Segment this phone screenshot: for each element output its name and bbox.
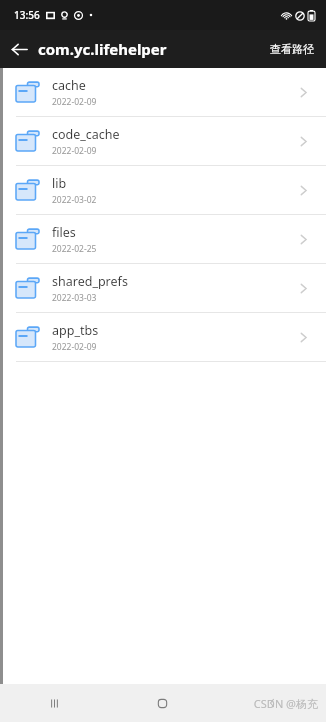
button[interactable]: 查看路径 (258, 34, 326, 64)
staticText: 2022-02-09 (52, 145, 97, 157)
button[interactable]: Back (0, 30, 38, 68)
button[interactable]: files (0, 215, 326, 263)
staticText: app_tbs (52, 322, 99, 339)
button[interactable]: lib (0, 166, 326, 214)
staticText: shared_prefs (52, 273, 128, 290)
staticText: lib (52, 175, 67, 192)
staticText: CSDN @杨充 (253, 696, 318, 711)
staticText: 2022-02-09 (52, 96, 97, 108)
button[interactable]: Home (108, 684, 217, 722)
staticText: code_cache (52, 126, 120, 143)
button[interactable]: Recents (0, 684, 108, 722)
staticText: cache (52, 77, 86, 94)
staticText: 2022-03-03 (52, 292, 97, 304)
staticText: 2022-02-25 (52, 243, 97, 255)
staticText: 2022-02-09 (52, 341, 97, 353)
button[interactable]: Back (217, 684, 326, 722)
staticText: 2022-03-02 (52, 194, 97, 206)
button[interactable]: cache (0, 68, 326, 116)
staticText: com.yc.lifehelper (38, 39, 167, 59)
staticText: 13:56 (14, 8, 40, 22)
staticText: files (52, 224, 76, 241)
button[interactable]: app_tbs (0, 313, 326, 361)
staticText: 查看路径 (270, 42, 314, 56)
button[interactable]: shared_prefs (0, 264, 326, 312)
button[interactable]: code_cache (0, 117, 326, 165)
